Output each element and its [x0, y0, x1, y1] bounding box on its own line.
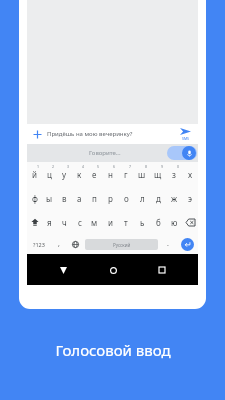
staticText: п	[92, 193, 97, 204]
staticText: Русский	[113, 242, 131, 248]
button[interactable]: Русский	[85, 239, 158, 250]
staticText: 8	[145, 164, 148, 169]
staticText: 5	[97, 164, 100, 169]
button[interactable]: а	[72, 186, 87, 210]
button[interactable]: х	[182, 162, 198, 186]
staticText: а	[77, 193, 82, 204]
button[interactable]: Back	[50, 257, 76, 283]
staticText: 3	[67, 164, 70, 169]
button[interactable]: Add attachment	[27, 124, 47, 144]
button[interactable]: Send SMS	[172, 124, 198, 144]
button[interactable]: ж	[166, 186, 182, 210]
button[interactable]: д	[150, 186, 166, 210]
staticText: м	[91, 217, 98, 228]
button[interactable]: Enter	[176, 234, 198, 254]
button[interactable]: .	[160, 234, 176, 254]
button[interactable]: и	[102, 210, 118, 234]
staticText: н	[108, 169, 113, 180]
staticText: 2	[52, 164, 55, 169]
button[interactable]: л	[134, 186, 150, 210]
staticText: б	[156, 217, 161, 228]
button[interactable]: ц	[42, 162, 57, 186]
button[interactable]: ч	[57, 210, 72, 234]
staticText: т	[124, 217, 128, 228]
staticText: и	[108, 217, 113, 228]
button[interactable]: ю	[166, 210, 182, 234]
staticText: я	[47, 217, 52, 228]
button[interactable]: т	[118, 210, 134, 234]
button[interactable]: к	[72, 162, 87, 186]
staticText: ь	[140, 217, 145, 228]
staticText: ж	[171, 193, 178, 204]
staticText: й	[32, 169, 37, 180]
button[interactable]: Change language	[67, 234, 83, 254]
button[interactable]: г	[118, 162, 134, 186]
button[interactable]: у	[57, 162, 72, 186]
staticText: .	[167, 239, 169, 249]
button[interactable]: Voice input	[182, 146, 196, 160]
staticText: Говорите...	[89, 149, 121, 157]
button[interactable]: в	[57, 186, 72, 210]
staticText: 0	[177, 164, 180, 169]
button[interactable]: п	[87, 186, 102, 210]
staticText: д	[156, 193, 161, 204]
staticText: в	[62, 193, 67, 204]
button[interactable]: Backspace	[182, 210, 198, 234]
button[interactable]: ы	[42, 186, 57, 210]
staticText: Придёшь на мою вечеринку?	[47, 130, 172, 138]
staticText: э	[188, 193, 192, 204]
staticText: о	[124, 193, 129, 204]
staticText: ш	[138, 169, 146, 180]
staticText: к	[77, 169, 82, 180]
button[interactable]: ?123	[27, 234, 51, 254]
button[interactable]: щ	[150, 162, 166, 186]
staticText: 7	[129, 164, 132, 169]
staticText: Голосовой ввод	[55, 340, 171, 360]
button[interactable]: ф	[27, 186, 42, 210]
button[interactable]: ш	[134, 162, 150, 186]
staticText: з	[172, 169, 176, 180]
button[interactable]: о	[118, 186, 134, 210]
staticText: 6	[113, 164, 116, 169]
staticText: ф	[32, 193, 38, 204]
button[interactable]: с	[72, 210, 87, 234]
button[interactable]: я	[42, 210, 57, 234]
button[interactable]: ,	[51, 234, 67, 254]
button[interactable]: Recents	[149, 257, 175, 283]
staticText: SMS	[182, 136, 190, 141]
staticText: с	[78, 217, 82, 228]
button[interactable]: м	[87, 210, 102, 234]
staticText: ц	[47, 169, 52, 180]
button[interactable]: н	[102, 162, 118, 186]
button[interactable]: б	[150, 210, 166, 234]
staticText: х	[188, 169, 193, 180]
button[interactable]: е	[87, 162, 102, 186]
staticText: 1	[37, 164, 40, 169]
button[interactable]: Shift	[27, 210, 42, 234]
staticText: ы	[46, 193, 53, 204]
staticText: ,	[58, 239, 60, 249]
staticText: щ	[154, 169, 162, 180]
staticText: л	[140, 193, 145, 204]
staticText: р	[108, 193, 113, 204]
staticText: ю	[171, 217, 178, 228]
button[interactable]: ь	[134, 210, 150, 234]
staticText: е	[92, 169, 97, 180]
button[interactable]: з	[166, 162, 182, 186]
button[interactable]: э	[182, 186, 198, 210]
staticText: 4	[82, 164, 85, 169]
staticText: ?123	[33, 241, 45, 248]
staticText: ч	[62, 217, 67, 228]
staticText: у	[62, 169, 67, 180]
button[interactable]: Home	[100, 257, 126, 283]
staticText: г	[124, 169, 128, 180]
button[interactable]: й	[27, 162, 42, 186]
staticText: 9	[161, 164, 164, 169]
button[interactable]: р	[102, 186, 118, 210]
